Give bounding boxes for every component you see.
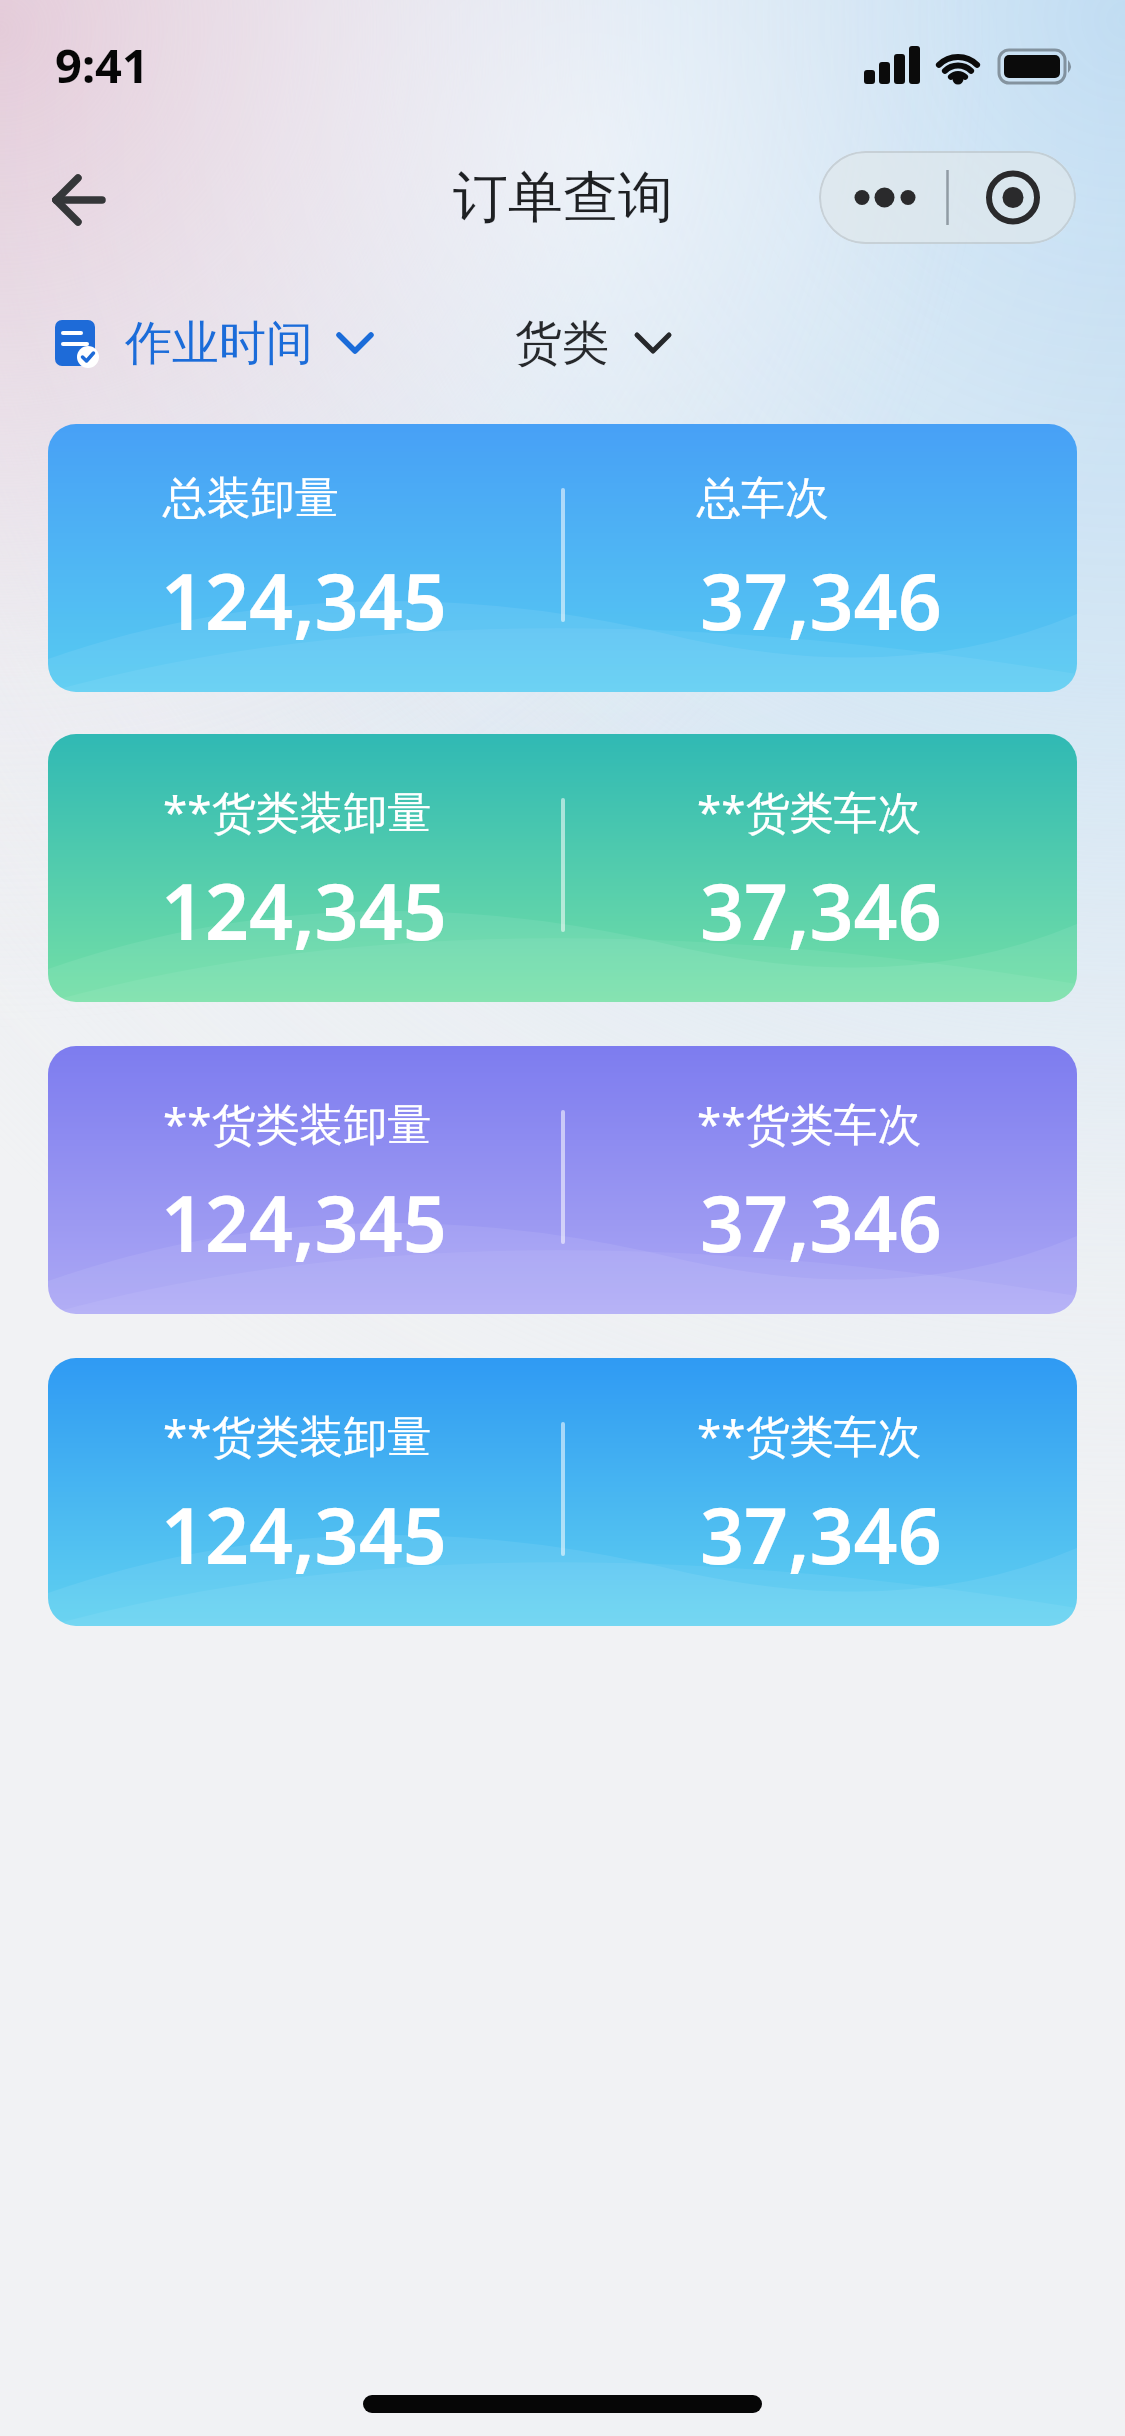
staticText: **货类车次 <box>697 1093 922 1153</box>
staticText: 作业时间 <box>125 314 313 373</box>
staticText: 37,346 <box>700 858 942 963</box>
staticText: **货类车次 <box>697 781 922 841</box>
staticText: 37,346 <box>700 1482 942 1587</box>
button[interactable]: 货类 <box>515 308 673 378</box>
staticText: 订单查询 <box>453 163 673 232</box>
staticText: 总装卸量 <box>163 471 339 526</box>
staticText: 37,346 <box>700 1170 942 1275</box>
button[interactable] <box>819 151 1076 244</box>
staticText: 124,345 <box>161 1170 447 1275</box>
staticText: 9:41 <box>55 33 149 97</box>
button[interactable]: 总装卸量 <box>48 424 1077 692</box>
button[interactable]: **货类装卸量 <box>48 734 1077 1002</box>
staticText: **货类装卸量 <box>163 1405 432 1465</box>
button[interactable] <box>40 160 120 240</box>
staticText: 124,345 <box>161 548 447 653</box>
button[interactable]: **货类装卸量 <box>48 1046 1077 1314</box>
staticText: 124,345 <box>161 858 447 963</box>
button[interactable]: 作业时间 <box>55 308 375 378</box>
staticText: 总车次 <box>697 471 829 526</box>
staticText: 货类 <box>515 314 609 373</box>
staticText: **货类装卸量 <box>163 1093 432 1153</box>
staticText: 37,346 <box>700 548 942 653</box>
button[interactable]: **货类装卸量 <box>48 1358 1077 1626</box>
staticText: **货类车次 <box>697 1405 922 1465</box>
staticText: 124,345 <box>161 1482 447 1587</box>
staticText: **货类装卸量 <box>163 781 432 841</box>
